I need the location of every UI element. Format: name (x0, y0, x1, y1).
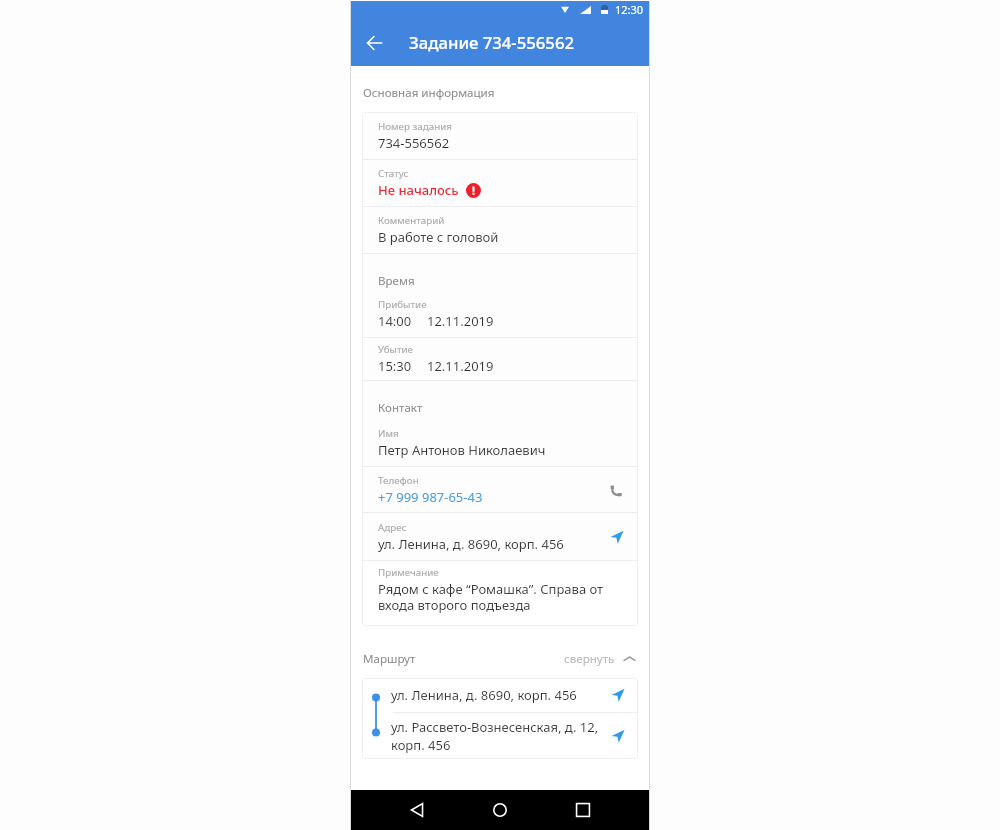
staticText: Маршрут (363, 651, 416, 667)
staticText: 12.11.2019 (427, 312, 494, 330)
staticText: Убытие (378, 343, 413, 356)
staticText: свернуть (564, 651, 615, 667)
staticText: Примечание (378, 566, 439, 579)
staticText: Основная информация (363, 85, 495, 101)
staticText: Время (378, 273, 415, 289)
staticText: 734-556562 (378, 134, 450, 152)
button[interactable]: Home (483, 793, 517, 827)
staticText: 12.11.2019 (427, 357, 494, 375)
staticText: Контакт (378, 400, 423, 416)
staticText: Комментарий (378, 214, 445, 227)
button[interactable]: Телефон (362, 467, 638, 512)
button[interactable]: Back (351, 22, 391, 62)
button[interactable]: Комментарий (362, 207, 638, 253)
staticText: Номер задания (378, 120, 452, 133)
button[interactable]: Статус (362, 160, 638, 206)
staticText: Задание 734-556562 (409, 31, 574, 54)
staticText: В работе с головой (378, 228, 499, 246)
button[interactable]: ул. Рассвето-Вознесенская, д. 12, корп. … (362, 713, 638, 759)
staticText: 15:30 (378, 357, 412, 375)
staticText: Статус (378, 167, 409, 180)
staticText: ул. Ленина, д. 8690, корп. 456 (391, 686, 605, 704)
staticText: Не началось (378, 181, 459, 199)
staticText: 14:00 (378, 312, 412, 330)
button[interactable]: Адрес (362, 513, 638, 560)
button[interactable]: Recent apps (566, 793, 600, 827)
staticText: ул. Ленина, д. 8690, корп. 456 (378, 535, 564, 553)
staticText: Имя (378, 427, 399, 440)
staticText: ул. Рассвето-Вознесенская, д. 12, корп. … (391, 718, 605, 754)
staticText: 12:30 (615, 2, 644, 17)
button[interactable]: ул. Ленина, д. 8690, корп. 456 (362, 678, 638, 712)
staticText: Рядом с кафе “Ромашка”. Справа от входа … (378, 580, 624, 614)
button[interactable]: Имя (362, 420, 638, 466)
button[interactable]: Примечание (362, 561, 638, 626)
button[interactable]: свернуть (564, 651, 635, 667)
staticText: +7 999 987-65-43 (378, 488, 483, 506)
button[interactable]: Прибытие (362, 290, 638, 337)
staticText: Петр Антонов Николаевич (378, 441, 546, 459)
button[interactable]: Убытие (362, 338, 638, 380)
staticText: Прибытие (378, 298, 427, 311)
button[interactable]: Back (400, 793, 434, 827)
staticText: Телефон (378, 474, 419, 487)
staticText: Адрес (378, 521, 407, 534)
button[interactable]: Номер задания (362, 112, 638, 159)
